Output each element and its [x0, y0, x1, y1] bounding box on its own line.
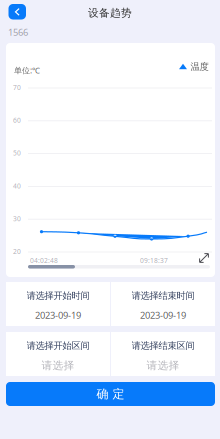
- staticText: 请选择: [41, 359, 74, 372]
- button[interactable]: 确 定: [6, 382, 215, 406]
- button[interactable]: 请选择开始区间: [6, 332, 110, 376]
- staticText: 设备趋势: [88, 6, 132, 20]
- staticText: 50: [13, 149, 21, 157]
- staticText: 60: [13, 116, 21, 125]
- staticText: 70: [13, 83, 21, 92]
- staticText: 确 定: [96, 387, 124, 401]
- staticText: 30: [13, 214, 21, 223]
- staticText: 40: [13, 181, 21, 190]
- button[interactable]: 请选择开始时间: [6, 282, 110, 326]
- staticText: 2023-09-19: [35, 309, 81, 321]
- button[interactable]: Fullscreen: [199, 253, 209, 263]
- staticText: 请选择结束时间: [131, 290, 194, 301]
- button[interactable]: 请选择结束时间: [111, 282, 215, 326]
- staticText: 2023-09-19: [140, 309, 186, 321]
- staticText: 温度: [190, 61, 208, 72]
- staticText: 请选择开始区间: [26, 340, 89, 351]
- staticText: 请选择: [146, 359, 179, 372]
- staticText: 04:02:48: [30, 256, 58, 265]
- button[interactable]: Back: [8, 4, 26, 19]
- staticText: 请选择结束区间: [131, 340, 194, 351]
- staticText: 20: [13, 247, 21, 256]
- button[interactable]: 请选择结束区间: [111, 332, 215, 376]
- staticText: 1566: [8, 26, 28, 38]
- staticText: 请选择开始时间: [26, 290, 89, 301]
- staticText: 单位:℃: [14, 65, 40, 76]
- staticText: 09:18:37: [140, 256, 168, 265]
